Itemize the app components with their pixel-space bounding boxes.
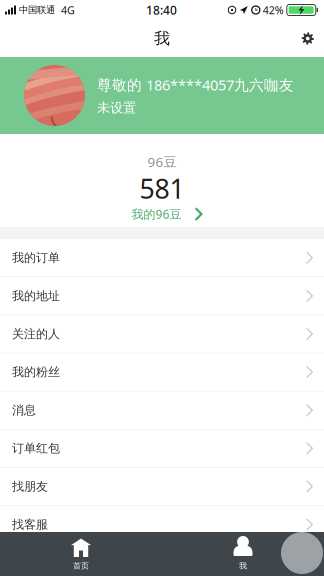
staticText: 尊敬的 186****4057九六咖友 bbox=[97, 75, 294, 95]
button[interactable]: Settings bbox=[292, 24, 323, 53]
staticText: 关注的人 bbox=[12, 327, 60, 341]
staticText: 我的粉丝 bbox=[12, 365, 60, 379]
staticText: 我的订单 bbox=[12, 250, 60, 265]
staticText: 4G bbox=[55, 3, 75, 17]
staticText: 找朋友 bbox=[12, 479, 48, 494]
staticText: 消息 bbox=[12, 403, 36, 417]
staticText: 18:40 bbox=[146, 2, 177, 18]
button[interactable]: 找客服 bbox=[0, 506, 324, 543]
staticText: 42% bbox=[260, 3, 287, 17]
staticText: 订单红包 bbox=[12, 441, 60, 456]
staticText: 我的地址 bbox=[12, 288, 60, 303]
button[interactable]: 我的粉丝 bbox=[0, 353, 324, 391]
button[interactable]: 订单红包 bbox=[0, 429, 324, 467]
button[interactable]: 我的地址 bbox=[0, 277, 324, 315]
button[interactable]: 我 bbox=[162, 532, 324, 576]
staticText: 首页 bbox=[73, 561, 89, 571]
button[interactable]: 消息 bbox=[0, 391, 324, 429]
staticText: 未设置 bbox=[97, 100, 136, 116]
staticText: 我 bbox=[239, 561, 247, 571]
button[interactable]: 我的96豆 bbox=[121, 206, 202, 222]
button[interactable]: 找朋友 bbox=[0, 468, 324, 505]
button[interactable]: 首页 bbox=[0, 532, 162, 576]
staticText: 我 bbox=[154, 29, 170, 48]
staticText: 找客服 bbox=[12, 517, 48, 532]
button[interactable]: 尊敬的 186****4057九六咖友 bbox=[0, 57, 324, 134]
button[interactable]: 我的订单 bbox=[0, 239, 324, 277]
staticText: 中国联通 bbox=[16, 4, 55, 16]
staticText: 我的96豆 bbox=[131, 206, 181, 222]
staticText: 581 bbox=[139, 171, 184, 206]
staticText: 96豆 bbox=[147, 153, 176, 171]
button[interactable]: 关注的人 bbox=[0, 315, 324, 353]
